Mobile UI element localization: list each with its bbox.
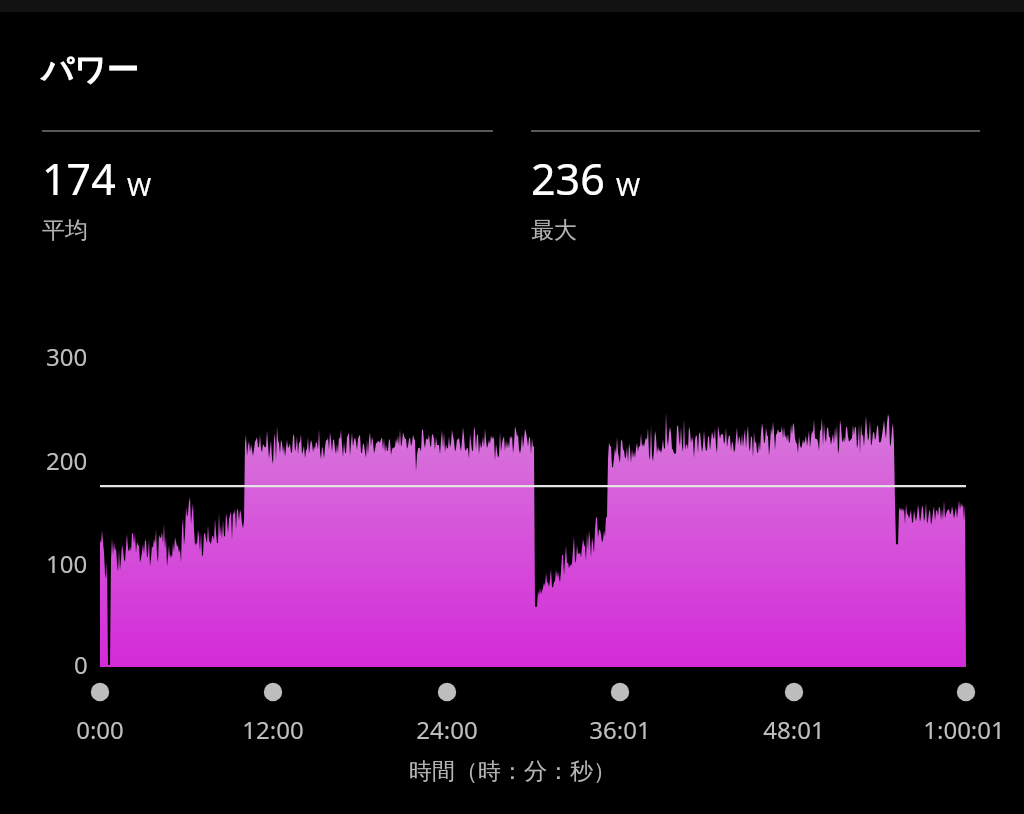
staticText: パワー (41, 50, 139, 90)
staticText: 12:00 (242, 713, 304, 746)
staticText: 174 (42, 149, 116, 208)
staticText: 24:00 (416, 713, 478, 746)
staticText: 48:01 (763, 713, 825, 746)
staticText: 時間（時：分：秒） (409, 757, 616, 786)
staticText: 0:00 (76, 713, 124, 746)
staticText: 100 (46, 547, 88, 580)
staticText: 36:01 (589, 713, 651, 746)
staticText: 300 (46, 340, 88, 373)
staticText: 200 (46, 444, 88, 477)
staticText: 0 (74, 648, 88, 681)
staticText: 平均 (42, 216, 88, 245)
staticText: 最大 (531, 216, 577, 245)
staticText: 236 (531, 149, 605, 208)
staticText: 1:00:01 (923, 713, 1005, 746)
staticText: W (616, 168, 641, 203)
button[interactable]: 174 (42, 130, 493, 245)
button[interactable]: 236 (531, 130, 980, 245)
button[interactable]: Power over time chart (0, 0, 1024, 814)
staticText: W (127, 168, 152, 203)
